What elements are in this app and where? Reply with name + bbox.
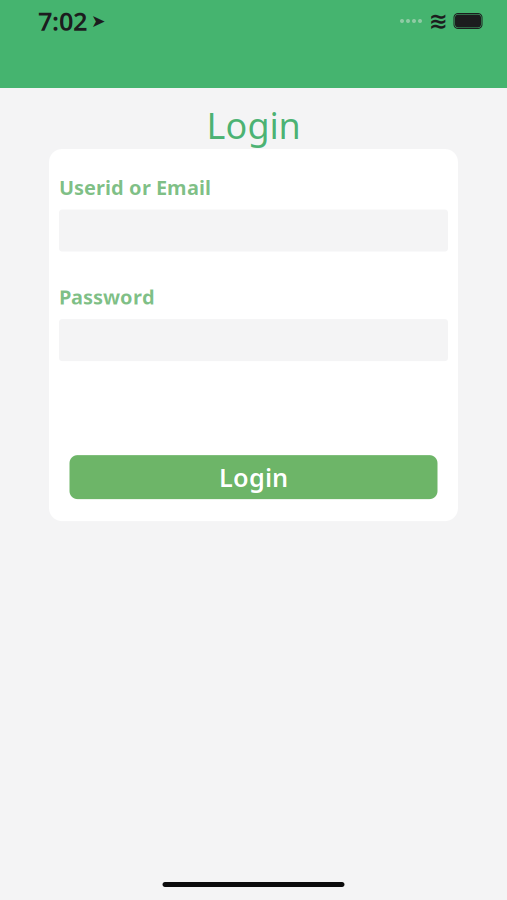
staticText: Login (219, 460, 288, 494)
staticText: Userid or Email (59, 174, 211, 201)
staticText: ➤ (91, 11, 106, 31)
staticText: Login (206, 101, 300, 149)
staticText: Password (59, 284, 155, 310)
staticText: 7:02 (38, 4, 87, 38)
button[interactable]: Login (69, 455, 437, 499)
staticText: ≋ (429, 8, 448, 34)
